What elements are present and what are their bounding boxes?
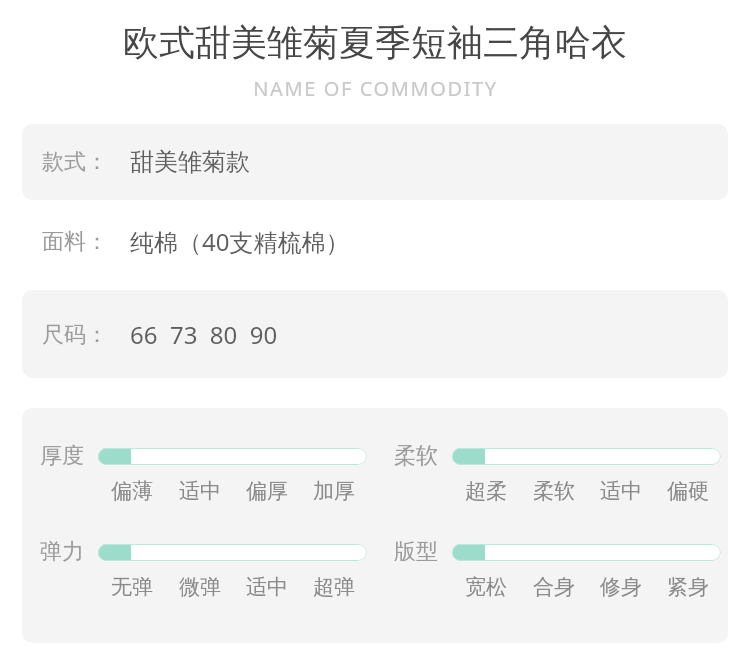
button[interactable]: 柔软 xyxy=(452,448,721,465)
button[interactable]: 偏薄 xyxy=(98,478,166,504)
button[interactable]: 尺码： xyxy=(22,290,728,378)
staticText: 偏硬 xyxy=(667,478,709,504)
staticText: 柔软 xyxy=(394,442,438,470)
button[interactable]: 弹力 xyxy=(98,544,367,561)
staticText: 弹力 xyxy=(40,538,84,566)
staticText: 66 73 80 90 xyxy=(130,318,278,351)
button[interactable]: 紧身 xyxy=(654,574,721,600)
button[interactable]: 无弹 xyxy=(98,574,166,600)
staticText: 厚度 xyxy=(40,442,84,470)
button[interactable]: 适中 xyxy=(233,574,300,600)
staticText: 尺码： xyxy=(42,321,108,349)
button[interactable]: 适中 xyxy=(166,478,233,504)
button[interactable]: 偏硬 xyxy=(654,478,721,504)
staticText: 适中 xyxy=(246,574,288,600)
staticText: 微弹 xyxy=(179,574,221,600)
staticText: 甜美雏菊款 xyxy=(130,147,250,177)
button[interactable]: 偏厚 xyxy=(233,478,300,504)
button[interactable]: 宽松 xyxy=(452,574,520,600)
staticText: 偏薄 xyxy=(111,478,153,504)
button[interactable]: 修身 xyxy=(587,574,654,600)
staticText: 柔软 xyxy=(533,478,575,504)
staticText: 合身 xyxy=(533,574,575,600)
staticText: 修身 xyxy=(600,574,642,600)
staticText: 纯棉（40支精梳棉） xyxy=(130,225,350,258)
staticText: 超弹 xyxy=(313,574,355,600)
staticText: 面料： xyxy=(42,228,108,256)
staticText: 超柔 xyxy=(465,478,507,504)
button[interactable]: 款式： xyxy=(22,124,728,200)
staticText: 紧身 xyxy=(667,574,709,600)
staticText: 宽松 xyxy=(465,574,507,600)
staticText: 款式： xyxy=(42,148,108,176)
button[interactable]: 版型 xyxy=(452,544,721,561)
button[interactable]: 柔软 xyxy=(520,478,587,504)
staticText: 无弹 xyxy=(111,574,153,600)
staticText: NAME OF COMMODITY xyxy=(253,75,498,102)
button[interactable]: 合身 xyxy=(520,574,587,600)
staticText: 加厚 xyxy=(313,478,355,504)
staticText: 偏厚 xyxy=(246,478,288,504)
button[interactable]: 适中 xyxy=(587,478,654,504)
button[interactable]: 超柔 xyxy=(452,478,520,504)
staticText: 适中 xyxy=(600,478,642,504)
staticText: 适中 xyxy=(179,478,221,504)
button[interactable]: 微弹 xyxy=(166,574,233,600)
button[interactable]: 厚度 xyxy=(98,448,367,465)
button[interactable]: 面料： xyxy=(22,200,728,283)
button[interactable]: 加厚 xyxy=(300,478,367,504)
button[interactable]: 超弹 xyxy=(300,574,367,600)
staticText: 欧式甜美雏菊夏季短袖三角哈衣 xyxy=(123,20,627,65)
staticText: 版型 xyxy=(394,538,438,566)
